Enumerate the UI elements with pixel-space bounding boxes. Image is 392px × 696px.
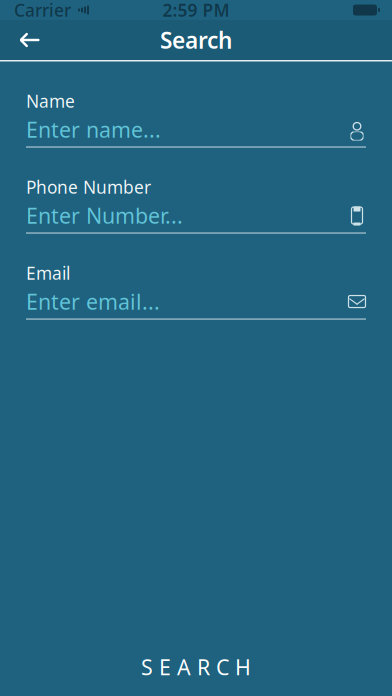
button[interactable]: Enter Number... (26, 198, 366, 233)
button[interactable]: Back (6, 20, 54, 60)
staticText: Name (26, 89, 75, 112)
staticText: Search (160, 25, 232, 55)
button[interactable]: Enter email... (26, 285, 366, 320)
staticText: Phone Number (26, 175, 151, 198)
staticText: Enter name... (26, 115, 161, 144)
button[interactable]: S E A R C H (0, 648, 392, 686)
staticText: Email (26, 261, 70, 284)
staticText: Carrier (14, 0, 71, 21)
button[interactable]: Enter name... (26, 112, 366, 147)
staticText: Enter Number... (26, 201, 183, 230)
staticText: S E A R C H (141, 653, 251, 681)
staticText: Enter email... (26, 287, 160, 316)
staticText: 2:59 PM (162, 0, 229, 21)
